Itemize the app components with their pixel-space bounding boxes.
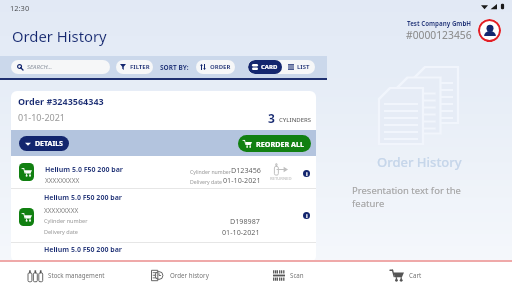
staticText: 3: [268, 110, 275, 126]
button[interactable]: Helium 5.0 F50 200 bar: [11, 156, 316, 188]
button[interactable]: CARD: [248, 60, 282, 74]
staticText: CYLINDERS: [279, 116, 312, 124]
button[interactable]: Account: [478, 19, 501, 42]
other: Order history illustration: [379, 64, 461, 146]
staticText: D123456: [231, 165, 261, 175]
staticText: DETAILS: [35, 139, 63, 149]
staticText: Scan: [290, 271, 304, 279]
staticText: REORDER ALL: [256, 139, 305, 149]
staticText: XXXXXXXXX: [44, 206, 79, 215]
staticText: 01-10-2021: [222, 227, 260, 237]
staticText: 12:30: [10, 3, 30, 13]
button[interactable]: Stock management: [28, 262, 105, 288]
button[interactable]: Helium 5.0 F50 200 bar: [11, 243, 316, 262]
button[interactable]: FILTER: [116, 60, 153, 74]
staticText: Stock management: [48, 271, 105, 279]
staticText: Cylinder number: [190, 168, 231, 175]
button[interactable]: Order history: [150, 262, 209, 288]
button[interactable]: ORDER: [196, 60, 235, 74]
button[interactable]: DETAILS: [19, 136, 69, 151]
staticText: Helium 5.0 F50 200 bar: [44, 193, 122, 203]
button[interactable]: Scan: [273, 262, 304, 288]
button[interactable]: REORDER ALL: [238, 135, 311, 152]
staticText: ORDER: [210, 63, 231, 71]
staticText: Order history: [170, 271, 209, 279]
staticText: Presentation text for the feature: [352, 184, 461, 210]
staticText: Cart: [409, 271, 422, 279]
button[interactable]: SEARCH...: [11, 60, 110, 74]
staticText: Order #3243564343: [18, 95, 104, 107]
button[interactable]: LIST: [282, 60, 315, 74]
staticText: 01-10-2021: [18, 111, 65, 123]
staticText: SORT BY:: [160, 63, 189, 72]
staticText: i: [306, 212, 308, 219]
staticText: i: [306, 170, 308, 177]
staticText: LIST: [297, 63, 310, 71]
staticText: XXXXXXXXX: [45, 176, 80, 185]
staticText: SEARCH...: [27, 63, 53, 71]
staticText: Delivery date: [190, 178, 222, 185]
staticText: FILTER: [130, 63, 150, 71]
staticText: Cylinder number: [44, 217, 88, 224]
staticText: #0000123456: [406, 28, 472, 42]
staticText: Helium 5.0 F50 200 bar: [44, 245, 122, 255]
staticText: Delivery date: [44, 228, 78, 235]
staticText: RETURNED: [270, 176, 292, 182]
staticText: D198987: [230, 216, 260, 226]
staticText: Order History: [377, 153, 462, 171]
staticText: Order History: [12, 26, 107, 46]
staticText: 01-10-2021: [223, 175, 261, 185]
button[interactable]: Cart: [390, 262, 422, 288]
staticText: Helium 5.0 F50 200 bar: [45, 165, 123, 175]
staticText: Test Company GmbH: [407, 19, 472, 27]
button[interactable]: Helium 5.0 F50 200 bar: [11, 189, 316, 242]
staticText: CARD: [261, 63, 278, 71]
